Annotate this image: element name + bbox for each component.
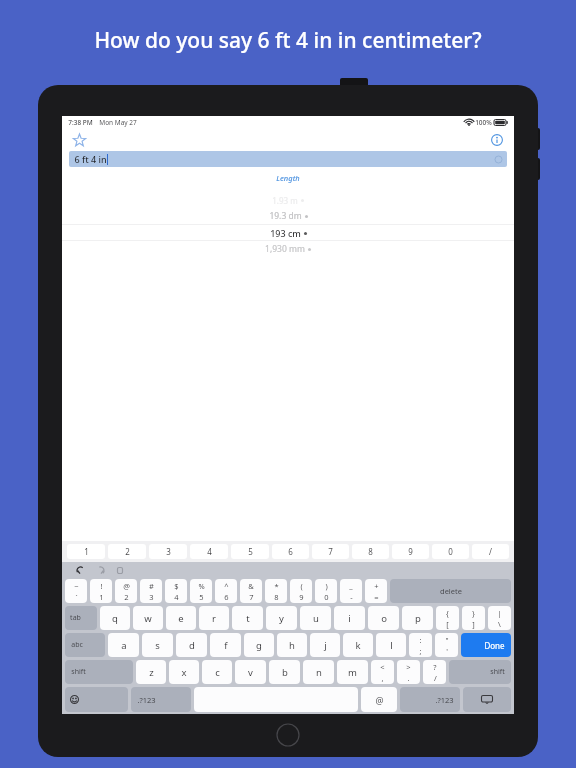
staticText: ] xyxy=(472,619,475,629)
button[interactable]: : xyxy=(409,633,432,657)
button[interactable]: 6 xyxy=(272,544,309,559)
button[interactable]: g xyxy=(244,633,274,657)
button[interactable]: | xyxy=(488,606,511,630)
button[interactable]: 0 xyxy=(432,544,469,559)
button[interactable]: l xyxy=(376,633,406,657)
button[interactable]: Info xyxy=(488,131,506,149)
button[interactable]: { xyxy=(436,606,459,630)
button[interactable]: delete xyxy=(390,579,511,603)
button[interactable]: e xyxy=(166,606,196,630)
button[interactable]: ? xyxy=(423,660,446,684)
button[interactable]: .?123 xyxy=(131,687,191,712)
button[interactable]: r xyxy=(199,606,229,630)
button[interactable]: Paste xyxy=(110,562,130,579)
button[interactable]: t xyxy=(232,606,263,630)
button[interactable]: Undo xyxy=(70,562,90,579)
button[interactable]: ( xyxy=(290,579,312,603)
button[interactable]: h xyxy=(277,633,307,657)
button[interactable]: .?123 xyxy=(400,687,460,712)
button[interactable]: 9 xyxy=(392,544,429,559)
button[interactable]: b xyxy=(269,660,300,684)
staticText: @ xyxy=(375,694,384,706)
button[interactable]: m xyxy=(337,660,368,684)
button[interactable]: k xyxy=(343,633,373,657)
button[interactable]: " xyxy=(435,633,458,657)
button[interactable]: _ xyxy=(340,579,362,603)
staticText: y xyxy=(279,612,284,625)
button[interactable]: / xyxy=(472,544,509,559)
button[interactable]: o xyxy=(368,606,399,630)
button[interactable]: 6 ft 4 in xyxy=(69,151,507,167)
button[interactable]: n xyxy=(303,660,334,684)
button[interactable]: u xyxy=(300,606,331,630)
button[interactable]: tab xyxy=(65,606,97,630)
button[interactable]: 8 xyxy=(352,544,389,559)
button[interactable]: $ xyxy=(165,579,187,603)
staticText: p xyxy=(415,612,421,625)
staticText: [ xyxy=(446,619,449,629)
staticText: How do you say 6 ft 4 in in centimeter? xyxy=(94,26,482,55)
staticText: . xyxy=(407,673,410,683)
button[interactable]: d xyxy=(176,633,207,657)
staticText: l xyxy=(390,639,393,652)
staticText: x xyxy=(181,666,187,679)
button[interactable]: s xyxy=(142,633,173,657)
staticText: .?123 xyxy=(137,695,156,705)
button[interactable]: Done xyxy=(461,633,511,657)
button[interactable]: 7 xyxy=(312,544,349,559)
staticText: 5 xyxy=(248,546,253,557)
button[interactable]: 193 cm xyxy=(62,225,514,240)
button[interactable]: shift xyxy=(65,660,133,684)
staticText: a xyxy=(121,639,127,652)
button[interactable]: # xyxy=(140,579,162,603)
staticText: Done xyxy=(484,640,505,651)
button[interactable]: v xyxy=(235,660,266,684)
button[interactable]: ~ xyxy=(65,579,87,603)
button[interactable]: z xyxy=(136,660,166,684)
button[interactable]: * xyxy=(265,579,287,603)
button[interactable]: shift xyxy=(449,660,511,684)
button[interactable]: 2 xyxy=(108,544,146,559)
button[interactable]: % xyxy=(190,579,212,603)
button[interactable]: c xyxy=(202,660,232,684)
staticText: > xyxy=(406,662,411,672)
staticText: i xyxy=(348,612,351,625)
staticText: $ xyxy=(174,581,179,591)
button[interactable]: 4 xyxy=(190,544,228,559)
button[interactable]: ) xyxy=(315,579,337,603)
button[interactable]: Home xyxy=(275,722,301,748)
button[interactable]: p xyxy=(402,606,433,630)
button[interactable]: & xyxy=(240,579,262,603)
button[interactable]: ^ xyxy=(215,579,237,603)
button[interactable]: Favorite xyxy=(70,131,88,149)
staticText: j xyxy=(324,639,327,652)
button[interactable]: 3 xyxy=(149,544,187,559)
button[interactable]: @ xyxy=(115,579,137,603)
button[interactable]: } xyxy=(462,606,485,630)
button[interactable]: ! xyxy=(90,579,112,603)
button[interactable]: f xyxy=(210,633,241,657)
staticText: d xyxy=(189,639,195,652)
button[interactable]: @ xyxy=(361,687,397,712)
button[interactable]: + xyxy=(365,579,387,603)
button[interactable]: w xyxy=(133,606,163,630)
button[interactable]: Emoji xyxy=(65,687,128,712)
button[interactable]: a xyxy=(108,633,139,657)
button[interactable]: i xyxy=(334,606,365,630)
staticText: tab xyxy=(70,613,81,623)
staticText: ; xyxy=(419,646,422,656)
button[interactable]: x xyxy=(169,660,199,684)
button[interactable]: > xyxy=(397,660,420,684)
staticText: 0 xyxy=(324,592,329,602)
button[interactable]: q xyxy=(100,606,130,630)
button[interactable]: Hide keyboard xyxy=(463,687,511,712)
button[interactable]: abc xyxy=(65,633,105,657)
staticText: h xyxy=(289,639,295,652)
button[interactable]: j xyxy=(310,633,340,657)
button[interactable]: 5 xyxy=(231,544,269,559)
button[interactable]: 1 xyxy=(67,544,105,559)
button[interactable]: y xyxy=(266,606,297,630)
button[interactable]: < xyxy=(371,660,394,684)
button[interactable]: Redo xyxy=(90,562,110,579)
